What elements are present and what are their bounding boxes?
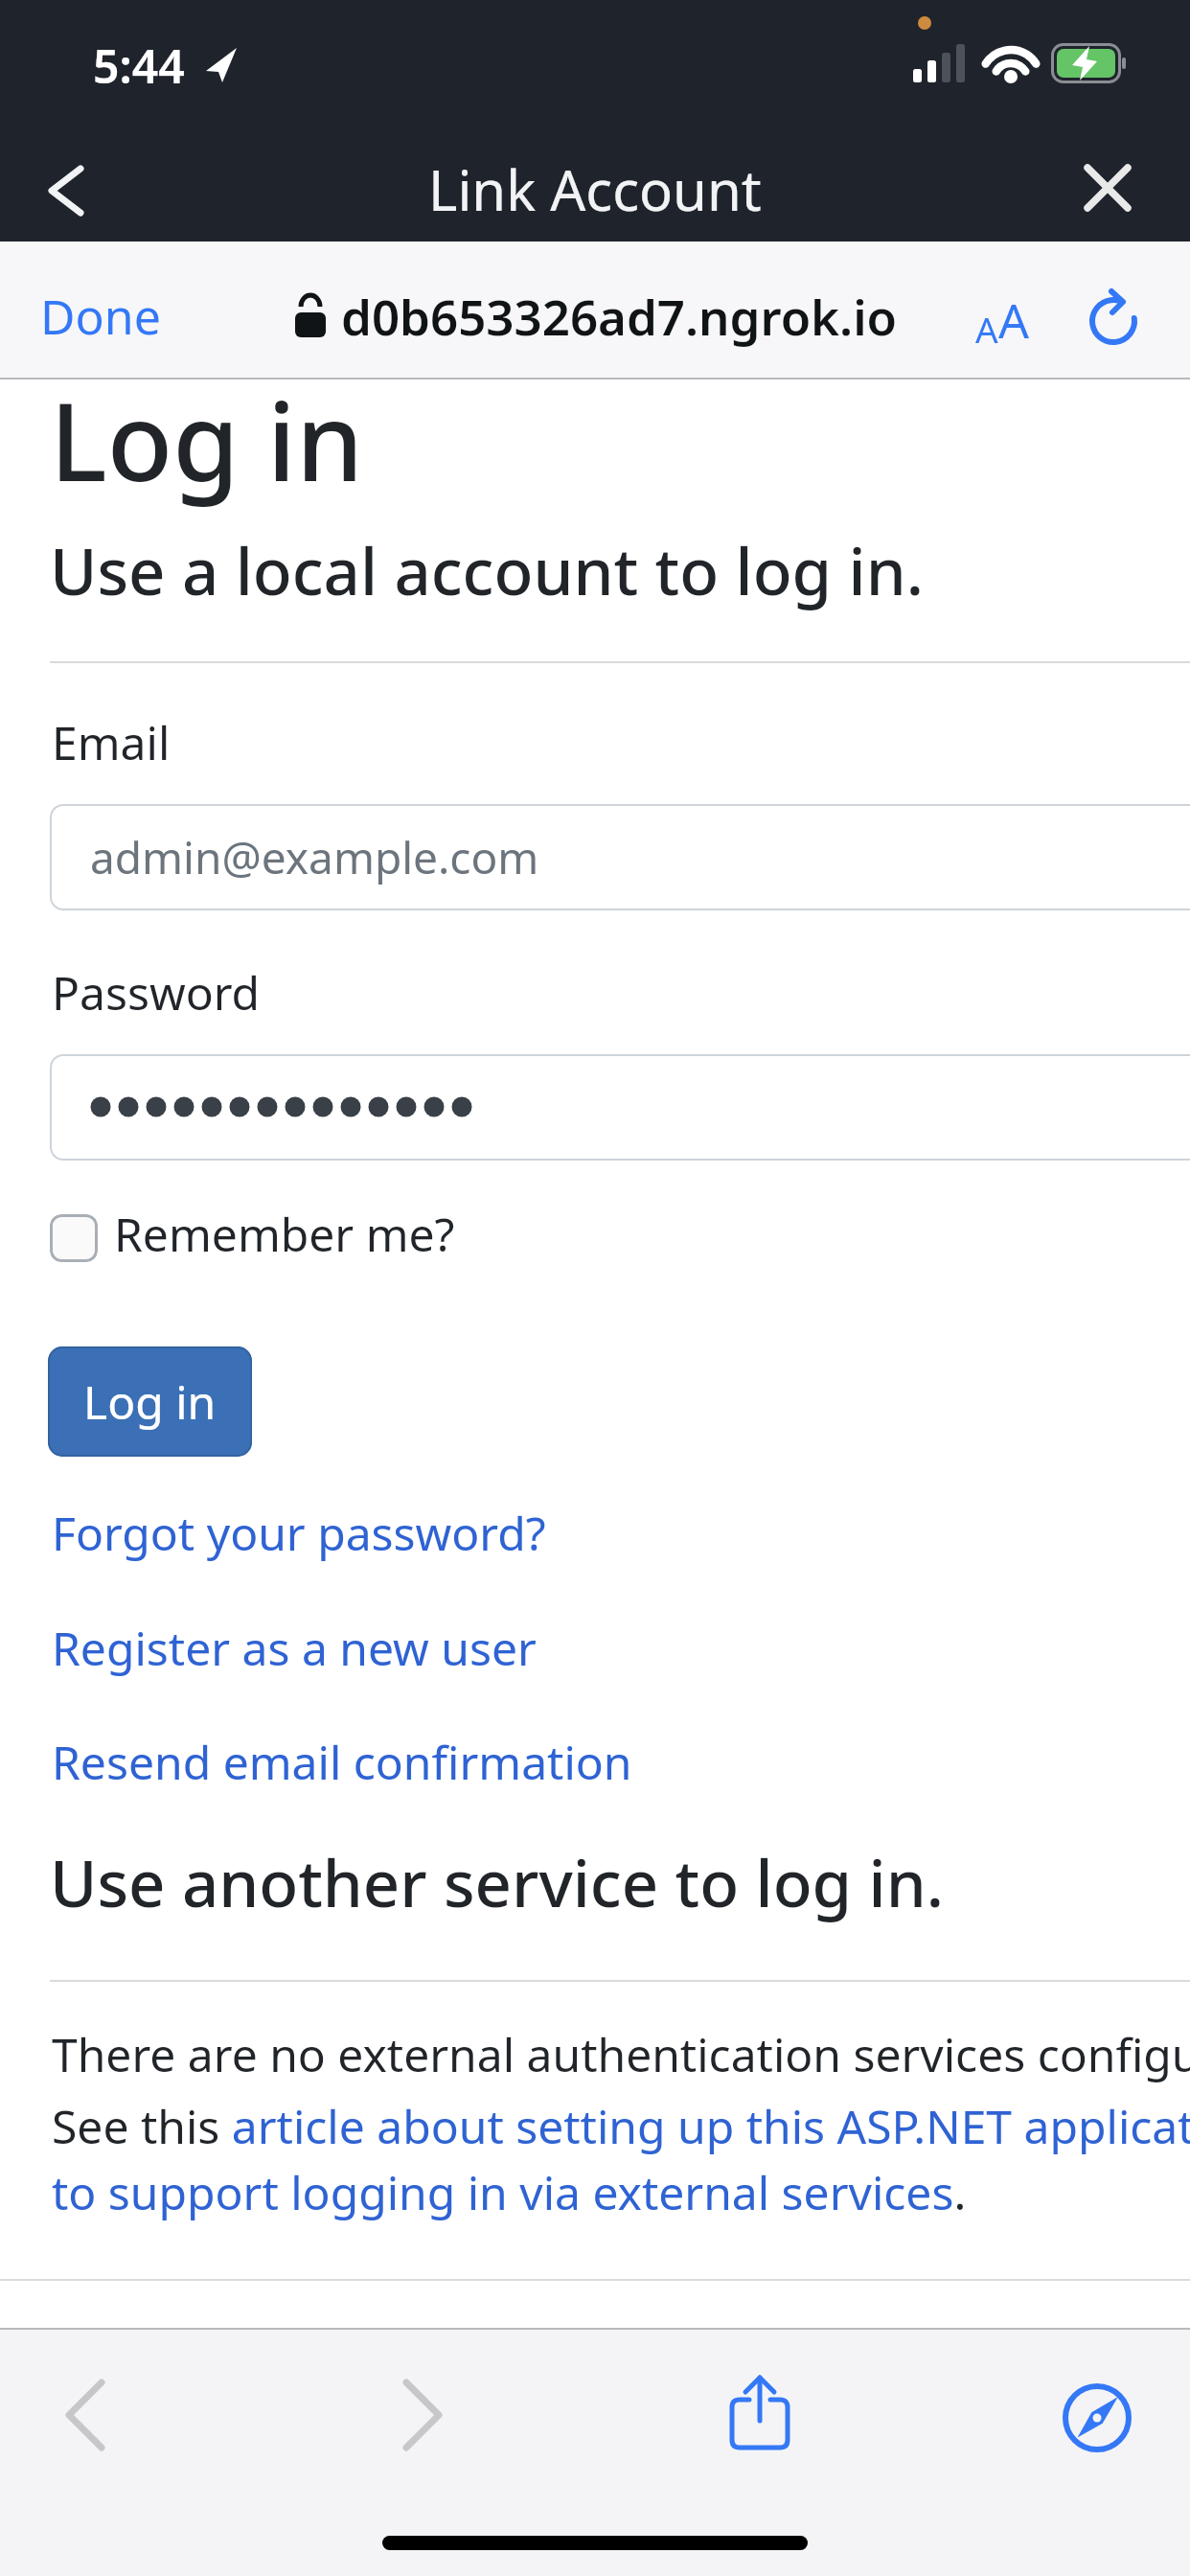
- button[interactable]: admin@example.com: [50, 804, 1190, 910]
- button[interactable]: [402, 2380, 445, 2449]
- staticText: Use another service to log in.: [50, 1838, 944, 1925]
- button[interactable]: [48, 167, 84, 215]
- button[interactable]: Resend email confirmation: [52, 1731, 632, 1793]
- button[interactable]: [50, 1214, 98, 1262]
- staticText: Log in: [83, 1370, 217, 1433]
- button[interactable]: Forgot your password?: [52, 1502, 546, 1564]
- button[interactable]: A: [975, 287, 1029, 353]
- staticText: 5:44: [93, 34, 185, 97]
- button[interactable]: [1085, 165, 1131, 211]
- staticText: Link Account: [428, 151, 762, 227]
- staticText: A: [998, 287, 1029, 353]
- button[interactable]: [728, 2375, 791, 2451]
- staticText: There are no external authentication ser…: [52, 2023, 1190, 2085]
- staticText: Use a local account to log in.: [50, 526, 924, 613]
- button[interactable]: [1088, 289, 1142, 343]
- staticText: admin@example.com: [90, 827, 539, 887]
- staticText: A: [975, 305, 998, 353]
- staticText: to support logging in via external servi…: [52, 2161, 967, 2223]
- staticText: Email: [52, 711, 171, 773]
- staticText: Password: [52, 961, 261, 1023]
- button[interactable]: [63, 2380, 105, 2449]
- staticText: Log in: [50, 366, 364, 513]
- button[interactable]: [1063, 2383, 1132, 2452]
- button[interactable]: Log in: [48, 1346, 252, 1457]
- button[interactable]: Register as a new user: [52, 1617, 537, 1679]
- staticText: Remember me?: [114, 1203, 455, 1265]
- button[interactable]: [50, 1054, 1190, 1161]
- staticText: Resend email confirmation: [52, 1731, 632, 1793]
- staticText: d0b653326ad7.ngrok.io: [341, 283, 898, 349]
- staticText: Register as a new user: [52, 1617, 537, 1679]
- button[interactable]: Done: [40, 284, 161, 349]
- staticText: Done: [40, 284, 161, 349]
- staticText: Forgot your password?: [52, 1502, 546, 1564]
- staticText: See this article about setting up this A…: [52, 2095, 1190, 2157]
